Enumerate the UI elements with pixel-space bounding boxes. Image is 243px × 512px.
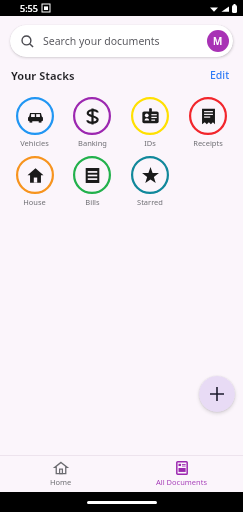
button[interactable]: Edit bbox=[208, 66, 232, 84]
button[interactable]: Vehicles bbox=[6, 95, 63, 150]
staticText: Receipts bbox=[193, 138, 223, 148]
staticText: Vehicles bbox=[20, 138, 49, 148]
staticText: House bbox=[23, 197, 46, 207]
button[interactable]: Add document bbox=[199, 376, 235, 412]
staticText: Bills bbox=[85, 197, 100, 207]
button[interactable]: IDs bbox=[121, 95, 179, 150]
other: Search bbox=[21, 35, 34, 48]
button[interactable]: House bbox=[6, 154, 63, 209]
staticText: Search your documents bbox=[43, 34, 160, 48]
staticText: Your Stacks bbox=[11, 68, 75, 83]
staticText: IDs bbox=[144, 138, 156, 148]
staticText: All Documents bbox=[156, 477, 208, 487]
button[interactable]: All Documents bbox=[121, 456, 243, 492]
staticText: M bbox=[213, 34, 223, 48]
button[interactable]: Profile bbox=[207, 30, 229, 52]
button[interactable]: Bills bbox=[63, 154, 121, 209]
button[interactable]: Home bbox=[0, 456, 121, 492]
staticText: 5:55 bbox=[20, 2, 38, 14]
staticText: Starred bbox=[137, 197, 163, 207]
staticText: Banking bbox=[78, 138, 107, 148]
staticText: Home bbox=[50, 477, 72, 487]
button[interactable]: Search bbox=[10, 25, 233, 57]
button[interactable]: Starred bbox=[121, 154, 179, 209]
button[interactable]: Banking bbox=[63, 95, 121, 150]
button[interactable]: Receipts bbox=[179, 95, 237, 150]
staticText: Edit bbox=[210, 68, 230, 82]
